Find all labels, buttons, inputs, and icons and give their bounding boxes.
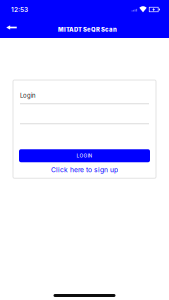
button[interactable]: LOGIN (19, 149, 150, 162)
staticText: 12:53 (11, 5, 28, 13)
staticText: Click here to sign up (51, 166, 118, 174)
staticText: Login (20, 92, 36, 99)
button[interactable]: Back (0, 19, 23, 38)
staticText: MITADT SeQR Scan (58, 26, 117, 33)
button[interactable]: Click here to sign up (13, 165, 156, 174)
staticText: LOGIN (76, 153, 92, 159)
